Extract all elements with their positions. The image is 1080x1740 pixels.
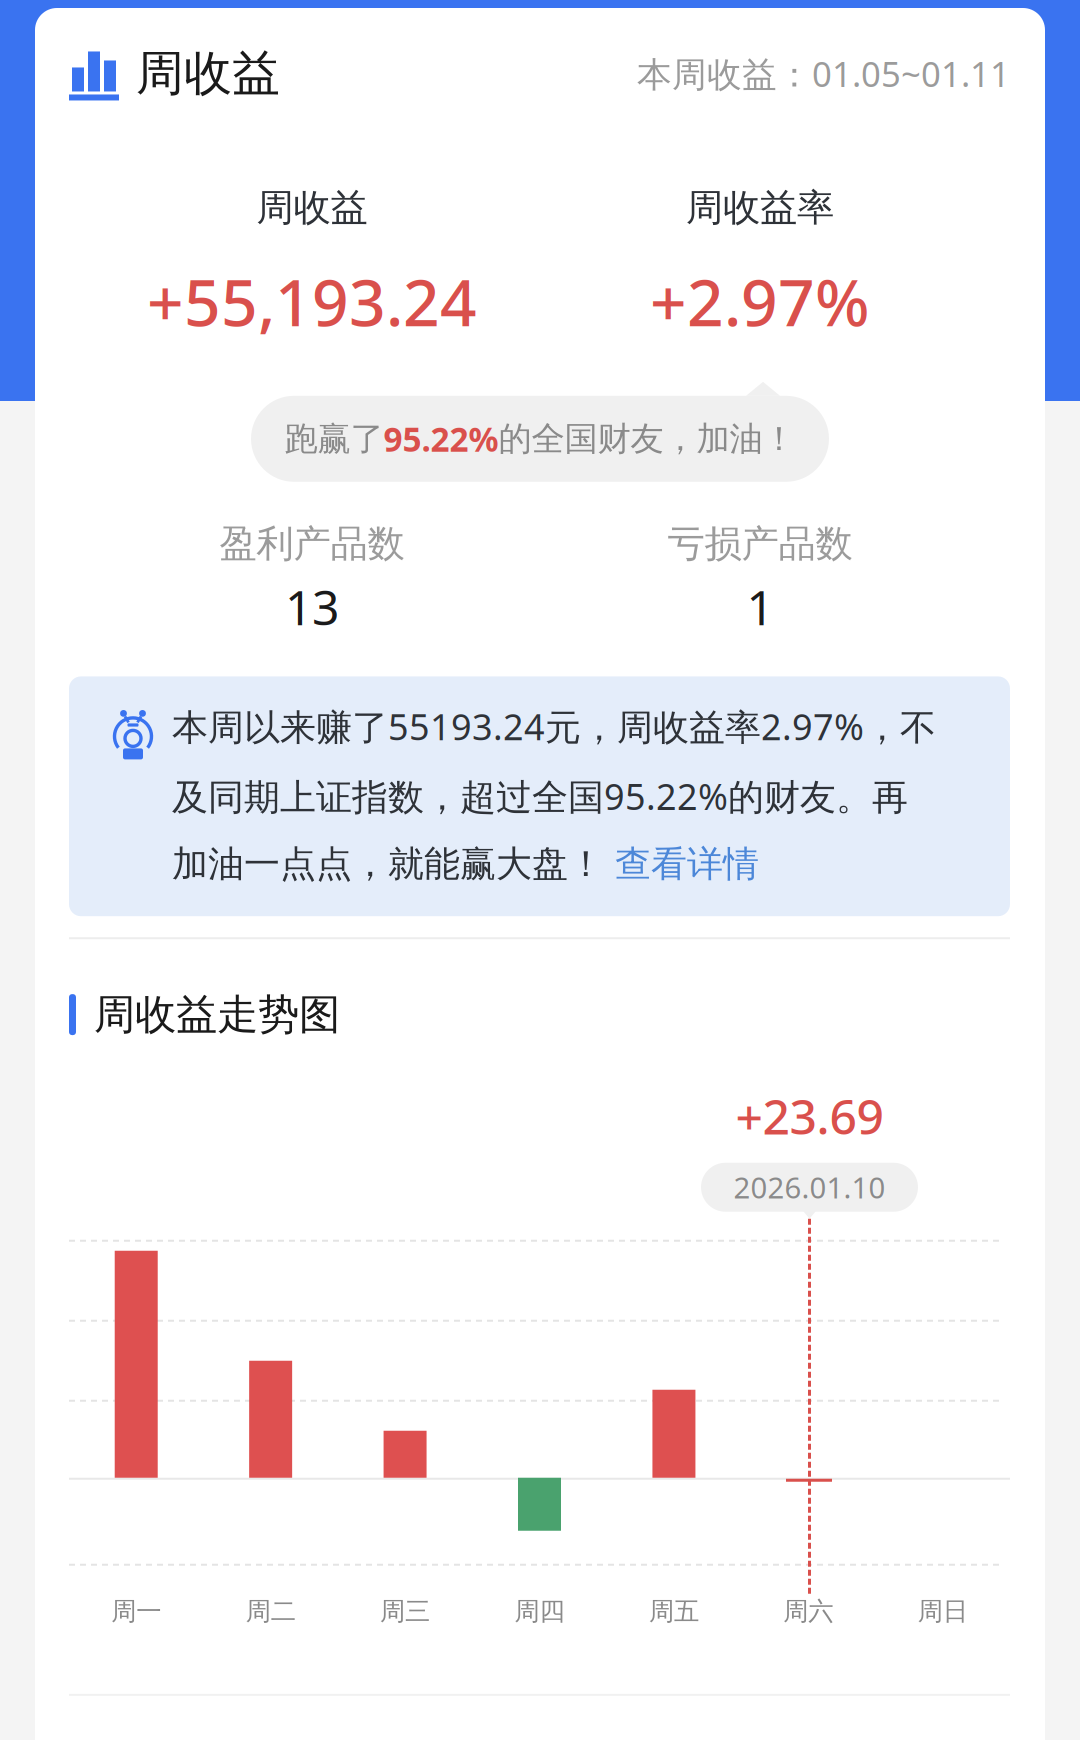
staticText: 加油一点点，就能赢大盘！	[172, 842, 615, 886]
staticText: +23.69	[735, 1084, 883, 1148]
staticText: 本周收益：01.05~01.11	[637, 50, 1010, 96]
staticText: 本周以来赚了55193.24元，周收益率2.97%，不	[172, 702, 936, 750]
staticText: 周二	[246, 1596, 296, 1627]
staticText: 盈利产品数	[219, 521, 404, 567]
staticText: 的全国财友，加油！	[498, 418, 795, 459]
staticText: 1	[746, 575, 773, 638]
staticText: 周收益走势图	[94, 989, 340, 1040]
staticText: 周一	[111, 1596, 161, 1627]
staticText: +2.97%	[650, 259, 870, 344]
staticText: 及同期上证指数，超过全国95.22%的财友。再	[172, 772, 908, 820]
staticText: +55,193.24	[147, 259, 477, 344]
staticText: 亏损产品数	[667, 521, 852, 567]
staticText: 2026.01.10	[733, 1168, 885, 1207]
staticText: 周日	[918, 1596, 968, 1627]
button[interactable]: 本周以来赚了55193.24元，周收益率2.97%，不	[69, 676, 1010, 916]
staticText: 周收益	[256, 185, 367, 231]
staticText: 周六	[783, 1596, 833, 1627]
staticText: 周收益率	[686, 185, 834, 231]
staticText: 周五	[649, 1596, 699, 1627]
staticText: 13	[285, 575, 339, 638]
staticText: 95.22%	[383, 417, 498, 461]
staticText: 周收益	[136, 44, 280, 103]
staticText: 周三	[380, 1596, 430, 1627]
staticText: 查看详情	[615, 842, 759, 886]
staticText: 周四	[514, 1596, 564, 1627]
staticText: 跑赢了	[284, 418, 383, 459]
